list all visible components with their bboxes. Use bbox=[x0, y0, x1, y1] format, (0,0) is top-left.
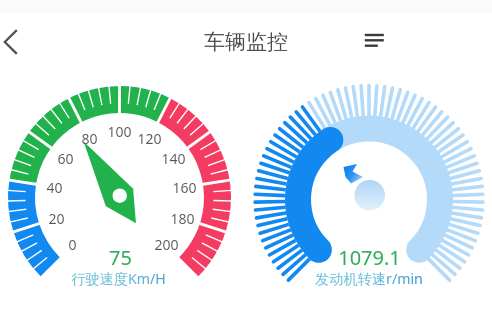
staticText: 发动机转速r/min bbox=[315, 269, 423, 288]
staticText: 200 bbox=[154, 235, 179, 254]
staticText: 160 bbox=[172, 178, 197, 197]
staticText: 120 bbox=[137, 129, 162, 148]
staticText: 行驶速度Km/H bbox=[71, 269, 166, 288]
button[interactable]: Back bbox=[0, 20, 40, 64]
staticText: 180 bbox=[170, 209, 195, 228]
staticText: 0 bbox=[68, 235, 77, 254]
staticText: 1079.1 bbox=[338, 244, 401, 271]
button[interactable]: Menu bbox=[358, 24, 392, 60]
staticText: 40 bbox=[46, 178, 63, 197]
staticText: 75 bbox=[109, 244, 132, 271]
staticText: 20 bbox=[48, 209, 65, 228]
staticText: 140 bbox=[161, 149, 186, 168]
staticText: 80 bbox=[81, 129, 98, 148]
staticText: 100 bbox=[107, 122, 132, 141]
staticText: 车辆监控 bbox=[204, 29, 288, 55]
staticText: 60 bbox=[57, 149, 74, 168]
